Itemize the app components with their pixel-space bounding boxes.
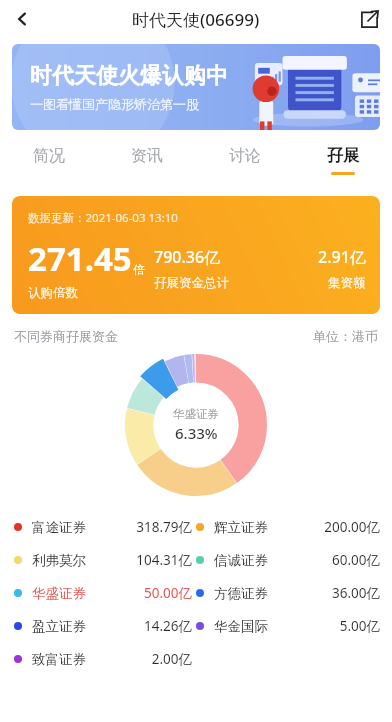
staticText: 790.36亿 <box>154 246 221 268</box>
staticText: 2.00亿 <box>151 650 192 668</box>
staticText: 华金国际 <box>214 618 268 635</box>
staticText: 时代天使(06699) <box>132 8 260 31</box>
staticText: 利弗莫尔 <box>32 552 86 569</box>
button[interactable]: 数据更新：2021-06-03 13:10 <box>12 196 380 314</box>
staticText: 盈立证券 <box>32 618 86 635</box>
button[interactable]: Back <box>0 0 44 38</box>
staticText: 200.00亿 <box>324 518 380 536</box>
staticText: 孖展资金总计 <box>154 275 229 291</box>
button[interactable]: 富途证券 <box>0 510 392 543</box>
staticText: 14.26亿 <box>143 617 192 635</box>
staticText: 信诚证券 <box>214 552 268 569</box>
staticText: 集资额 <box>328 275 366 291</box>
staticText: 辉立证券 <box>214 519 268 536</box>
button[interactable]: 华盛证券 <box>0 576 392 609</box>
staticText: 华盛证券 <box>32 585 86 602</box>
staticText: 318.79亿 <box>136 518 192 536</box>
staticText: 271.45 <box>28 236 132 281</box>
staticText: 一图看懂国产隐形矫治第一股 <box>30 96 199 112</box>
staticText: 2.91亿 <box>318 246 366 268</box>
staticText: 倍 <box>133 262 145 277</box>
button[interactable]: Share <box>346 0 392 38</box>
staticText: 方德证券 <box>214 585 268 602</box>
staticText: 认购倍数 <box>28 285 78 301</box>
staticText: 60.00亿 <box>331 551 380 569</box>
staticText: 资讯 <box>131 146 163 166</box>
staticText: 时代天使火爆认购中 <box>30 62 228 90</box>
staticText: 简况 <box>33 146 65 166</box>
staticText: 讨论 <box>229 146 261 166</box>
staticText: 104.31亿 <box>136 551 192 569</box>
staticText: 单位：港币 <box>313 328 378 344</box>
button[interactable]: 时代天使火爆认购中 <box>12 44 380 130</box>
staticText: 50.00亿 <box>143 584 192 602</box>
staticText: 华盛证券 <box>173 407 219 421</box>
button[interactable]: 讨论 <box>196 138 294 182</box>
staticText: 致富证券 <box>32 651 86 668</box>
staticText: 孖展 <box>327 146 359 166</box>
button[interactable]: 资讯 <box>98 138 196 182</box>
button[interactable]: 盈立证券 <box>0 609 392 642</box>
staticText: 数据更新：2021-06-03 13:10 <box>28 210 178 226</box>
staticText: 6.33% <box>175 423 218 443</box>
button[interactable]: 孖展 <box>294 138 392 182</box>
staticText: 富途证券 <box>32 519 86 536</box>
staticText: 不同券商孖展资金 <box>14 328 118 344</box>
staticText: 36.00亿 <box>331 584 380 602</box>
button[interactable]: 利弗莫尔 <box>0 543 392 576</box>
staticText: 5.00亿 <box>339 617 380 635</box>
button[interactable]: 致富证券 <box>0 642 392 675</box>
button[interactable]: 简况 <box>0 138 98 182</box>
